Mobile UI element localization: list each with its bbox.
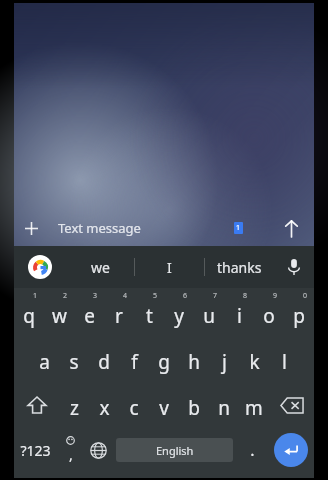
staticText: 6	[183, 291, 188, 301]
staticText: t	[146, 303, 153, 329]
button[interactable]: thanks	[205, 246, 274, 288]
button[interactable]: .	[236, 428, 268, 472]
button[interactable]: 2	[44, 290, 74, 336]
button[interactable]: I	[135, 246, 204, 288]
staticText: b	[188, 395, 200, 421]
staticText: 7	[213, 291, 218, 301]
staticText: u	[203, 303, 215, 329]
button[interactable]: Add attachment	[14, 211, 48, 245]
staticText: 5	[153, 291, 158, 301]
button[interactable]: n	[209, 382, 239, 428]
button[interactable]: v	[149, 382, 179, 428]
button[interactable]: m	[239, 382, 269, 428]
button[interactable]: d	[89, 336, 119, 382]
button[interactable]: x	[89, 382, 119, 428]
button[interactable]: Enter	[274, 433, 308, 467]
staticText: Text message	[58, 219, 141, 237]
button[interactable]: Voice input	[274, 246, 314, 288]
staticText: 1	[33, 291, 38, 301]
staticText: f	[131, 349, 138, 375]
staticText: v	[159, 395, 169, 421]
staticText: ?123	[20, 441, 51, 460]
staticText: w	[52, 303, 67, 329]
staticText: m	[245, 395, 263, 421]
staticText: r	[115, 303, 123, 329]
staticText: z	[70, 395, 79, 421]
button[interactable]: Text message	[48, 207, 226, 249]
button[interactable]: 5	[134, 290, 164, 336]
staticText: q	[23, 303, 35, 329]
staticText: p	[293, 303, 305, 329]
staticText: 1	[236, 223, 241, 233]
button[interactable]: c	[119, 382, 149, 428]
button[interactable]: f	[119, 336, 149, 382]
staticText: o	[263, 303, 275, 329]
button[interactable]: SIM	[226, 216, 250, 240]
staticText: 2	[63, 291, 68, 301]
button[interactable]: 0	[284, 290, 314, 336]
staticText: ,	[69, 445, 73, 464]
button[interactable]: k	[239, 336, 269, 382]
button[interactable]: English	[116, 438, 233, 462]
button[interactable]: z	[59, 382, 89, 428]
staticText: English	[156, 443, 194, 458]
button[interactable]: 6	[164, 290, 194, 336]
button[interactable]: h	[179, 336, 209, 382]
staticText: k	[249, 349, 260, 375]
button[interactable]: j	[209, 336, 239, 382]
staticText: 0	[303, 291, 308, 301]
staticText: g	[158, 349, 170, 375]
button[interactable]: g	[149, 336, 179, 382]
button[interactable]: b	[179, 382, 209, 428]
button[interactable]: Google	[14, 246, 66, 288]
button[interactable]: 1	[14, 290, 44, 336]
staticText: h	[188, 349, 200, 375]
button[interactable]: Shift	[14, 382, 59, 428]
staticText: d	[98, 349, 110, 375]
staticText: l	[282, 349, 287, 375]
button[interactable]: 9	[254, 290, 284, 336]
staticText: thanks	[217, 258, 262, 277]
button[interactable]: 8	[224, 290, 254, 336]
staticText: s	[69, 349, 79, 375]
staticText: j	[222, 349, 227, 375]
staticText: 9	[273, 291, 278, 301]
staticText: a	[39, 349, 50, 375]
staticText: 8	[243, 291, 248, 301]
button[interactable]: 4	[104, 290, 134, 336]
staticText: y	[174, 303, 184, 329]
staticText: x	[99, 395, 110, 421]
staticText: i	[237, 303, 242, 329]
button[interactable]: Backspace	[269, 382, 314, 428]
button[interactable]: ?123	[14, 428, 57, 472]
staticText: I	[167, 258, 172, 277]
staticText: e	[84, 303, 95, 329]
staticText: c	[129, 395, 139, 421]
button[interactable]: we	[66, 246, 134, 288]
button[interactable]: Emoji and comma	[57, 428, 84, 472]
staticText: .	[250, 439, 255, 461]
button[interactable]: a	[29, 336, 59, 382]
button[interactable]: Send	[272, 209, 310, 247]
staticText: n	[218, 395, 230, 421]
button[interactable]: Change keyboard language	[84, 428, 113, 472]
button[interactable]: 3	[74, 290, 104, 336]
staticText: we	[91, 258, 110, 277]
button[interactable]: s	[59, 336, 89, 382]
staticText: 3	[93, 291, 98, 301]
staticText: 4	[123, 291, 128, 301]
button[interactable]: l	[269, 336, 299, 382]
button[interactable]: 7	[194, 290, 224, 336]
